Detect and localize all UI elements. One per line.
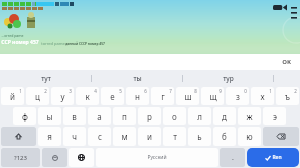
button[interactable]: х xyxy=(251,87,274,105)
staticText: и xyxy=(147,131,152,142)
button[interactable]: з xyxy=(226,87,249,105)
staticText: ты xyxy=(133,74,142,83)
button[interactable]: л xyxy=(188,107,211,125)
staticText: . xyxy=(232,153,234,163)
button[interactable]: Backspace xyxy=(263,127,299,146)
staticText: с xyxy=(98,131,102,142)
button[interactable]: е xyxy=(101,87,124,105)
staticText: ъ xyxy=(285,91,290,102)
button[interactable]: OK xyxy=(282,58,291,66)
button[interactable]: ъ xyxy=(276,87,299,105)
other: Change language xyxy=(69,148,94,167)
staticText: ц xyxy=(35,91,40,102)
staticText: з xyxy=(236,91,240,102)
button[interactable]: б xyxy=(213,127,236,146)
staticText: я xyxy=(47,131,52,142)
staticText: ?123 xyxy=(14,154,27,162)
staticText: б xyxy=(222,131,227,142)
button[interactable]: й xyxy=(1,87,24,105)
button[interactable]: м xyxy=(113,127,136,146)
staticText: ю xyxy=(246,131,253,142)
button[interactable]: ты xyxy=(92,70,183,86)
staticText: ш xyxy=(184,91,192,102)
staticText: й xyxy=(10,91,15,102)
staticText: т xyxy=(173,131,177,142)
button[interactable]: р xyxy=(138,107,161,125)
staticText: ч xyxy=(72,131,77,142)
staticText: д xyxy=(222,111,227,122)
button[interactable]: щ xyxy=(201,87,224,105)
button[interactable]: Русский xyxy=(96,148,218,167)
staticText: 2 xyxy=(44,88,47,94)
staticText: OK xyxy=(282,58,291,66)
staticText: к xyxy=(85,91,90,102)
button[interactable]: п xyxy=(113,107,136,125)
staticText: р xyxy=(147,111,152,122)
staticText: 5 xyxy=(119,88,122,94)
button[interactable]: ж xyxy=(238,107,261,125)
staticText: 7 xyxy=(169,88,172,94)
button[interactable]: Send xyxy=(247,148,299,167)
staticText: э xyxy=(273,111,277,122)
button[interactable]: г xyxy=(151,87,174,105)
staticText: тур xyxy=(223,74,234,83)
button[interactable]: с xyxy=(88,127,111,146)
button[interactable]: ч xyxy=(63,127,86,146)
staticText: ь xyxy=(197,131,202,142)
staticText: л xyxy=(197,111,202,122)
other: Emoji xyxy=(42,148,67,167)
staticText: 3 xyxy=(69,88,72,94)
staticText: у xyxy=(60,91,65,102)
button[interactable]: Menu xyxy=(290,4,298,12)
button[interactable]: а xyxy=(88,107,111,125)
staticText: о xyxy=(172,111,177,122)
button[interactable]: Change language xyxy=(69,148,94,167)
button[interactable]: в xyxy=(63,107,86,125)
button[interactable]: ы xyxy=(38,107,61,125)
staticText: н xyxy=(135,91,140,102)
button[interactable]: о xyxy=(163,107,186,125)
button[interactable]: н xyxy=(126,87,149,105)
button[interactable]: ц xyxy=(26,87,49,105)
button[interactable]: Emoji xyxy=(42,148,67,167)
staticText: п xyxy=(122,111,127,122)
button[interactable]: ш xyxy=(176,87,199,105)
staticText: х xyxy=(260,91,265,102)
staticText: 1 xyxy=(19,88,22,94)
button[interactable]: ф xyxy=(13,107,36,125)
staticText: ССР номер 457 xyxy=(1,39,39,46)
staticText: 8 xyxy=(194,88,197,94)
staticText: е xyxy=(110,91,115,102)
button[interactable]: э xyxy=(263,107,286,125)
button[interactable]: д xyxy=(213,107,236,125)
staticText: Ren xyxy=(272,154,282,161)
staticText: а xyxy=(97,111,102,122)
staticText: 9 xyxy=(219,88,222,94)
staticText: 6 xyxy=(144,88,147,94)
button[interactable]: ю xyxy=(238,127,261,146)
staticText: тут xyxy=(41,74,51,83)
staticText: в xyxy=(72,111,77,122)
button[interactable]: тут xyxy=(0,70,92,86)
button[interactable]: у xyxy=(51,87,74,105)
button[interactable]: . xyxy=(220,148,245,167)
staticText: ж xyxy=(246,111,253,122)
staticText: ы xyxy=(46,111,53,122)
staticText: Русский xyxy=(147,154,167,161)
staticText: 0 xyxy=(244,88,247,94)
button[interactable]: т xyxy=(163,127,186,146)
button[interactable]: тур xyxy=(183,70,274,86)
staticText: г xyxy=(161,91,165,102)
staticText: 2 xyxy=(294,88,297,94)
button[interactable]: и xyxy=(138,127,161,146)
button[interactable]: к xyxy=(76,87,99,105)
button[interactable]: ь xyxy=(188,127,211,146)
button[interactable]: я xyxy=(38,127,61,146)
button[interactable]: ?123 xyxy=(1,148,40,167)
button[interactable]: Shift xyxy=(1,127,36,146)
other: Shift xyxy=(1,127,36,146)
staticText: щ xyxy=(209,91,217,102)
staticText: данный СССР номер 457 xyxy=(65,42,105,46)
button[interactable]: Video xyxy=(273,3,287,12)
